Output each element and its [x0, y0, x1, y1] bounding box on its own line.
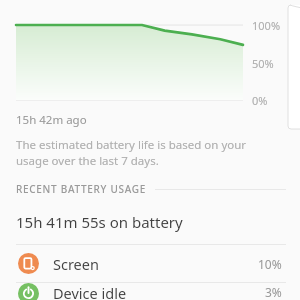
staticText: 50% [252, 56, 274, 71]
staticText: 0% [252, 93, 268, 108]
button[interactable]: Screen [0, 245, 300, 282]
staticText: Screen [53, 254, 258, 274]
staticText: 10% [258, 256, 282, 272]
staticText: RECENT BATTERY USAGE [16, 182, 147, 196]
staticText: The estimated battery life is based on y… [16, 137, 278, 168]
staticText: 100% [252, 18, 281, 33]
staticText: 15h 42m ago [16, 112, 87, 128]
staticText: 3% [265, 284, 282, 300]
staticText: 15h 41m 55s on battery [16, 212, 183, 232]
button[interactable]: Device idle [0, 283, 300, 300]
staticText: Device idle [53, 283, 265, 300]
